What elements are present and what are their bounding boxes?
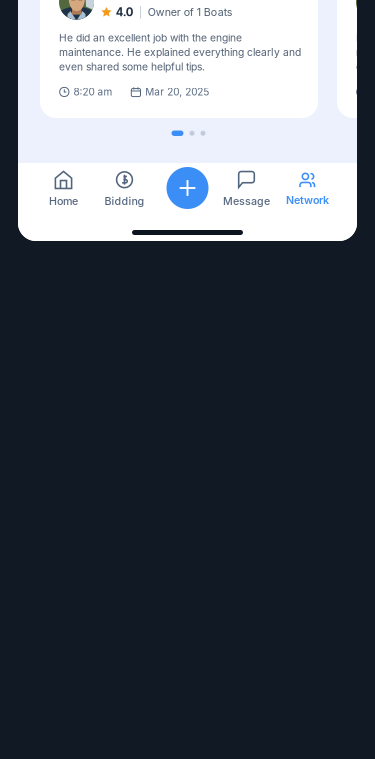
staticText: Network [286, 193, 329, 206]
staticText: He did an excellent job with the engine … [356, 32, 375, 73]
staticText: Owner of 1 Boats [148, 6, 233, 19]
staticText: Mar 20, 2025 [145, 86, 209, 98]
staticText: Bidding [104, 194, 144, 207]
button[interactable]: Create [155, 169, 216, 209]
button[interactable]: Home [33, 169, 94, 209]
button[interactable]: Network [277, 169, 338, 209]
staticText: He did an excellent job with the engine … [59, 32, 301, 73]
button[interactable]: Message [216, 169, 277, 209]
staticText: | [139, 6, 143, 19]
staticText: 8:20 am [74, 86, 113, 98]
staticText: Message [223, 194, 270, 207]
staticText: 4.0 [116, 5, 134, 19]
button[interactable]: Bidding [94, 169, 155, 209]
staticText: Home [49, 194, 78, 207]
